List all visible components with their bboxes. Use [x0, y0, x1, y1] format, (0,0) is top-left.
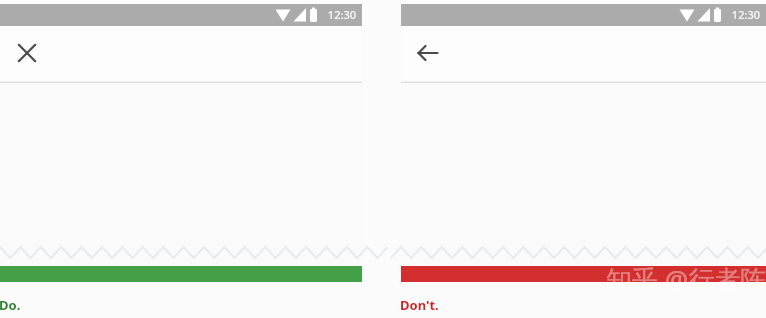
staticText: Don't. — [400, 296, 439, 314]
staticText: 知乎 @行者陈 — [606, 261, 766, 297]
staticText: Do. — [0, 296, 21, 314]
staticText: 12:30 — [314, 7, 356, 23]
button[interactable]: Back — [408, 33, 448, 73]
button[interactable]: Close — [7, 33, 47, 73]
staticText: 12:30 — [718, 7, 760, 23]
